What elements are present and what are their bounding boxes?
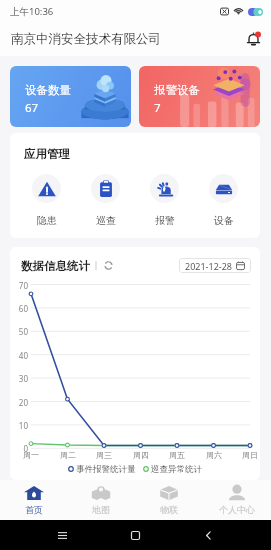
staticText: 设备数量 — [25, 83, 71, 97]
staticText: 首页 — [25, 504, 43, 515]
staticText: 7 — [154, 100, 161, 116]
button[interactable]: 首页 — [0, 480, 67, 520]
staticText: 周二 — [60, 450, 76, 460]
button[interactable]: 个人中心 — [203, 480, 271, 520]
staticText: 周三 — [96, 450, 112, 460]
button[interactable]: Notifications — [242, 28, 264, 50]
staticText: 周四 — [133, 450, 149, 460]
staticText: 报警 — [155, 214, 175, 227]
staticText: 67 — [25, 100, 39, 116]
button[interactable]: 报警 — [135, 174, 194, 227]
staticText: 周六 — [206, 450, 222, 460]
staticText: 南京中消安全技术有限公司 — [11, 31, 161, 47]
staticText: 应用管理 — [24, 147, 70, 161]
staticText: 40 — [18, 350, 28, 361]
staticText: 数据信息统计 — [21, 259, 90, 273]
button[interactable]: 巡查 — [76, 174, 135, 227]
button[interactable]: 报警设备 — [139, 66, 260, 127]
button[interactable]: 隐患 — [17, 174, 76, 227]
button[interactable]: 设备数量 — [10, 66, 131, 127]
staticText: 巡查 — [96, 214, 116, 227]
staticText: 周五 — [169, 450, 185, 460]
staticText: 20 — [18, 397, 28, 408]
button[interactable]: 地图 — [67, 480, 135, 520]
button[interactable]: 物联 — [135, 480, 203, 520]
staticText: 50 — [18, 326, 28, 337]
staticText: 周日 — [242, 450, 258, 460]
button[interactable]: Menu — [52, 525, 72, 545]
staticText: 事件报警统计量 — [76, 464, 136, 475]
staticText: 70 — [18, 280, 28, 291]
staticText: 周一 — [23, 450, 39, 460]
button[interactable]: Back — [198, 525, 218, 545]
staticText: 巡查异常统计 — [151, 464, 202, 475]
staticText: 60 — [18, 303, 28, 314]
button[interactable]: 2021-12-28 — [179, 258, 251, 273]
staticText: 10 — [18, 420, 28, 431]
staticText: 2021-12-28 — [185, 260, 232, 272]
staticText: 30 — [18, 373, 28, 384]
staticText: 报警设备 — [154, 83, 200, 97]
staticText: 物联 — [160, 504, 178, 515]
button[interactable]: 设备 — [194, 174, 253, 227]
staticText: 个人中心 — [219, 504, 255, 515]
staticText: 地图 — [92, 504, 110, 515]
staticText: 设备 — [214, 214, 234, 227]
staticText: 上午10:36 — [10, 5, 54, 18]
staticText: 0 — [23, 443, 28, 454]
button[interactable]: Refresh — [103, 260, 114, 271]
staticText: 隐患 — [37, 214, 57, 227]
button[interactable]: Home — [125, 525, 145, 545]
